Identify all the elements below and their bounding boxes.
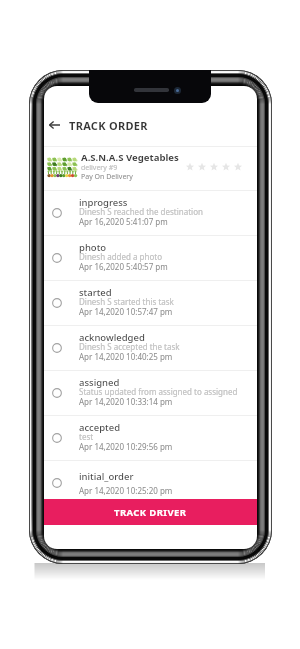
button[interactable]: photo (44, 236, 257, 281)
staticText: Apr 16,2020 5:41:07 pm (79, 216, 168, 227)
staticText: accepted (79, 421, 121, 434)
button[interactable]: assigned (44, 371, 257, 416)
button[interactable]: TRACK DRIVER (44, 499, 257, 525)
staticText: Apr 14,2020 10:57:47 pm (79, 306, 173, 317)
staticText: started (79, 286, 112, 299)
button[interactable]: initial_order (44, 461, 257, 506)
staticText: Status updated from assigned to assigned (79, 386, 238, 397)
staticText: Apr 14,2020 10:40:25 pm (79, 351, 173, 362)
staticText: Dinesh S accepted the task (79, 341, 180, 352)
button[interactable]: accepted (44, 416, 257, 461)
button[interactable]: inprogress (44, 191, 257, 236)
button[interactable]: A.S.N.A.S Vegetables (44, 147, 257, 189)
staticText: acknowledged (79, 331, 145, 344)
staticText: TRACK DRIVER (114, 506, 187, 519)
staticText: TRACK ORDER (69, 118, 148, 133)
staticText: Apr 14,2020 10:33:14 pm (79, 396, 173, 407)
staticText: Pay On Delivery (81, 172, 133, 182)
button[interactable]: acknowledged (44, 326, 257, 371)
staticText: inprogress (79, 196, 128, 209)
staticText: Dinesh added a photo (79, 251, 163, 262)
staticText: test (79, 431, 94, 442)
staticText: Dinesh S started this task (79, 296, 174, 307)
staticText: photo (79, 241, 107, 254)
staticText: Dinesh S reached the destination (79, 206, 203, 217)
staticText: delivery #9 (81, 163, 118, 173)
staticText: Apr 16,2020 5:40:57 pm (79, 261, 168, 272)
staticText: Apr 14,2020 10:29:56 pm (79, 441, 173, 452)
staticText: A.S.N.A.S Vegetables (81, 151, 179, 164)
staticText: assigned (79, 376, 120, 389)
button[interactable]: Back (45, 114, 64, 136)
staticText: Apr 14,2020 10:25:20 pm (79, 485, 173, 496)
button[interactable]: started (44, 281, 257, 326)
staticText: initial_order (79, 470, 134, 483)
